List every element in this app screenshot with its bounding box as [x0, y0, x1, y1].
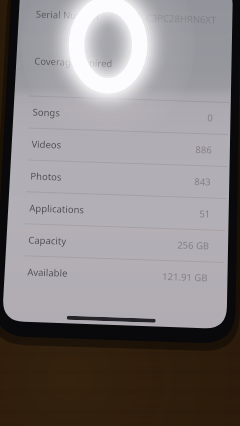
staticText: Photos — [30, 169, 63, 184]
staticText: Available — [27, 265, 68, 280]
button[interactable]: Capacity — [9, 223, 225, 262]
staticText: Coverage Expired — [34, 55, 113, 70]
button[interactable]: Serial Number — [16, 0, 232, 36]
staticText: Applications — [29, 201, 85, 216]
button[interactable]: Songs — [13, 95, 229, 134]
staticText: Capacity — [28, 233, 66, 248]
staticText: 843 — [194, 175, 212, 189]
staticText: 256 GB — [177, 238, 209, 252]
button[interactable]: Coverage Expired — [15, 44, 231, 83]
button[interactable]: Applications — [10, 191, 226, 230]
staticText: 886 — [195, 143, 213, 157]
staticText: 121.91 GB — [162, 270, 208, 284]
staticText: C3PC28HRN6XT — [146, 11, 217, 26]
staticText: 51 — [199, 207, 210, 220]
staticText: 0 — [207, 111, 214, 125]
staticText: Videos — [31, 137, 62, 151]
button[interactable]: Available — [8, 255, 224, 294]
staticText: Songs — [32, 105, 61, 119]
button[interactable]: Videos — [12, 127, 228, 166]
button[interactable]: Photos — [11, 159, 227, 198]
staticText: Serial Number — [36, 8, 101, 23]
